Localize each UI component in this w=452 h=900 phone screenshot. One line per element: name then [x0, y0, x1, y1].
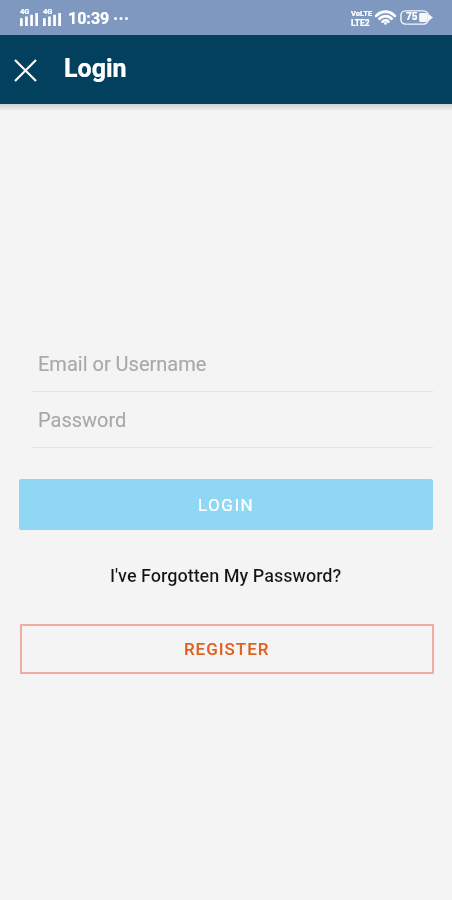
button[interactable]: I've Forgotten My Password? [0, 558, 452, 593]
staticText: 10:39 [68, 9, 110, 28]
button[interactable]: Close [0, 45, 50, 95]
staticText: I've Forgotten My Password? [110, 565, 342, 586]
button[interactable]: REGISTER [20, 624, 434, 674]
staticText: VoLTE [351, 9, 373, 18]
button[interactable]: LOGIN [19, 479, 433, 530]
staticText: 75 [406, 11, 418, 23]
staticText: LOGIN [198, 495, 255, 515]
staticText: REGISTER [184, 639, 270, 659]
staticText: Login [64, 54, 127, 83]
staticText: 4G [43, 7, 53, 16]
staticText: Email or Username [38, 352, 207, 375]
staticText: 4G [20, 7, 30, 16]
staticText: LTE2 [351, 18, 370, 28]
staticText: Password [38, 408, 127, 431]
